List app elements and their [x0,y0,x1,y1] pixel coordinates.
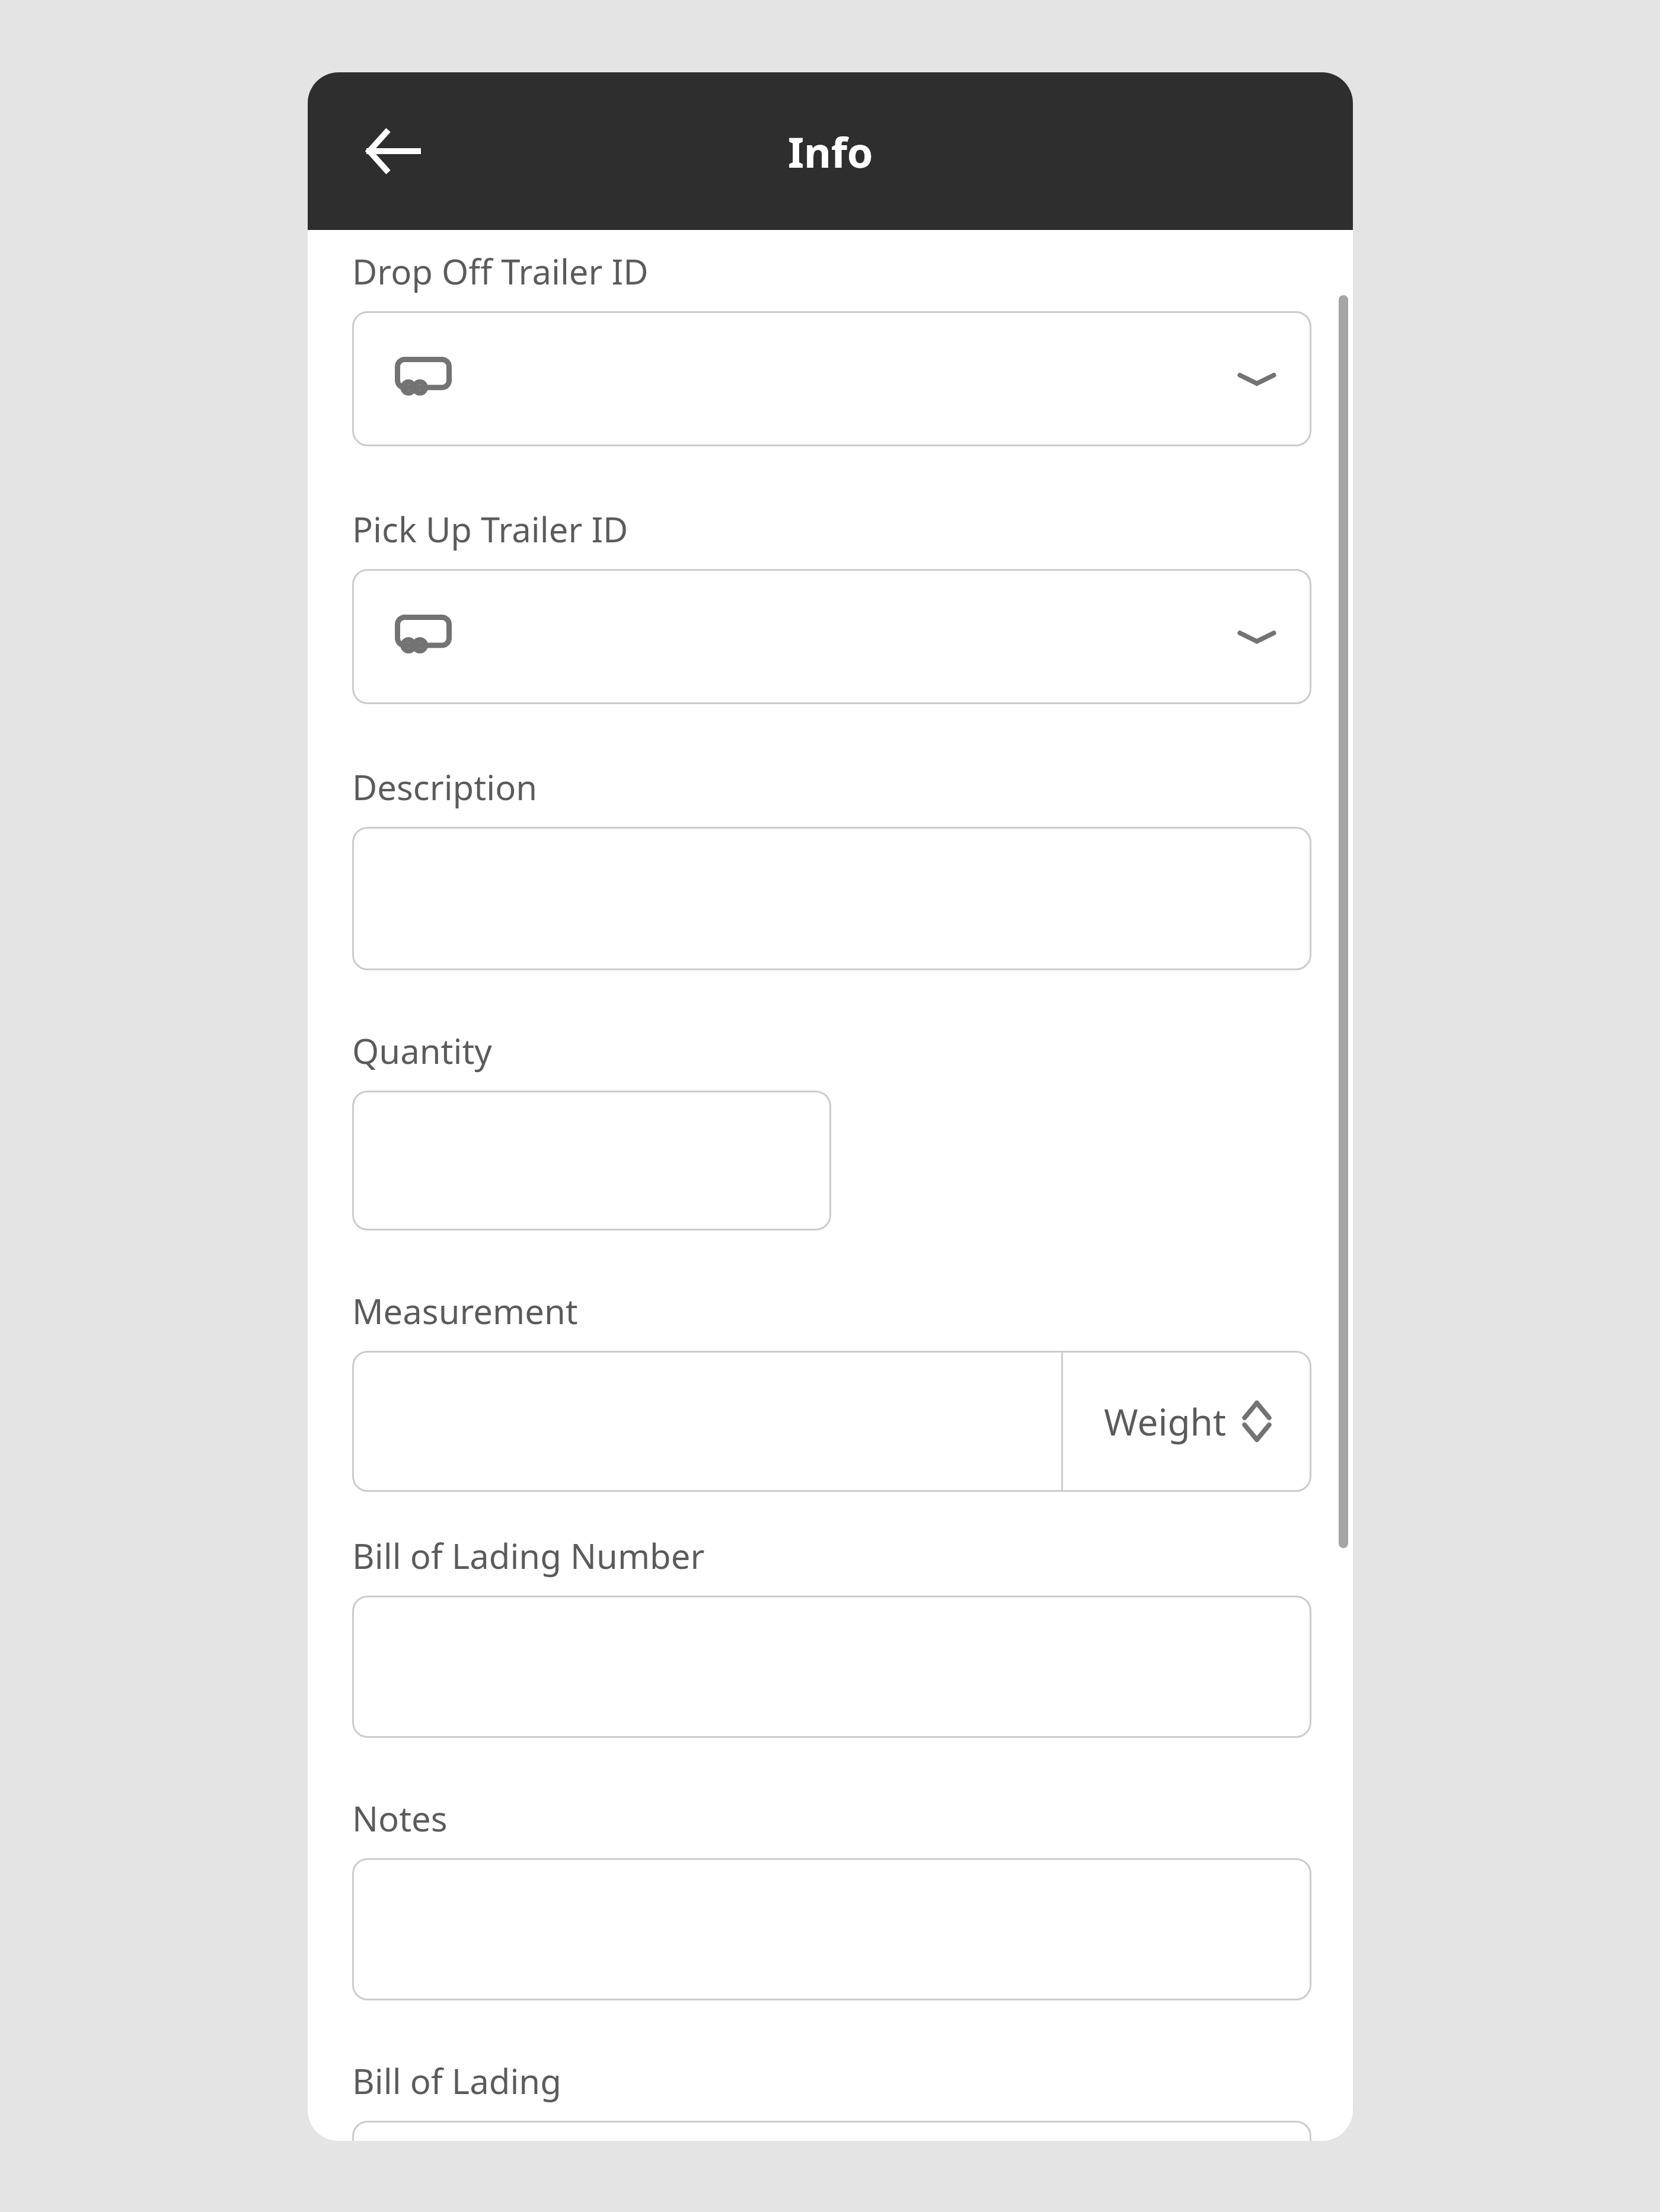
staticText: Quantity [352,1027,492,1074]
staticText: Pick Up Trailer ID [352,506,628,552]
button[interactable] [352,2121,1311,2141]
button[interactable] [352,1091,831,1230]
button[interactable] [352,1351,1061,1492]
staticText: Info [788,123,873,180]
staticText: Bill of Lading [352,2057,561,2104]
button[interactable] [352,1858,1311,2000]
staticText: Weight [1104,1396,1227,1446]
button[interactable] [352,827,1311,970]
staticText: Bill of Lading Number [352,1532,705,1579]
staticText: Notes [352,1795,448,1842]
button[interactable] [352,569,1311,704]
button[interactable]: Back [343,104,438,199]
button[interactable] [352,311,1311,446]
button[interactable]: Weight [1063,1351,1311,1492]
staticText: Measurement [352,1287,578,1334]
button[interactable] [352,1596,1311,1738]
staticText: Drop Off Trailer ID [352,248,649,295]
staticText: Description [352,763,538,810]
